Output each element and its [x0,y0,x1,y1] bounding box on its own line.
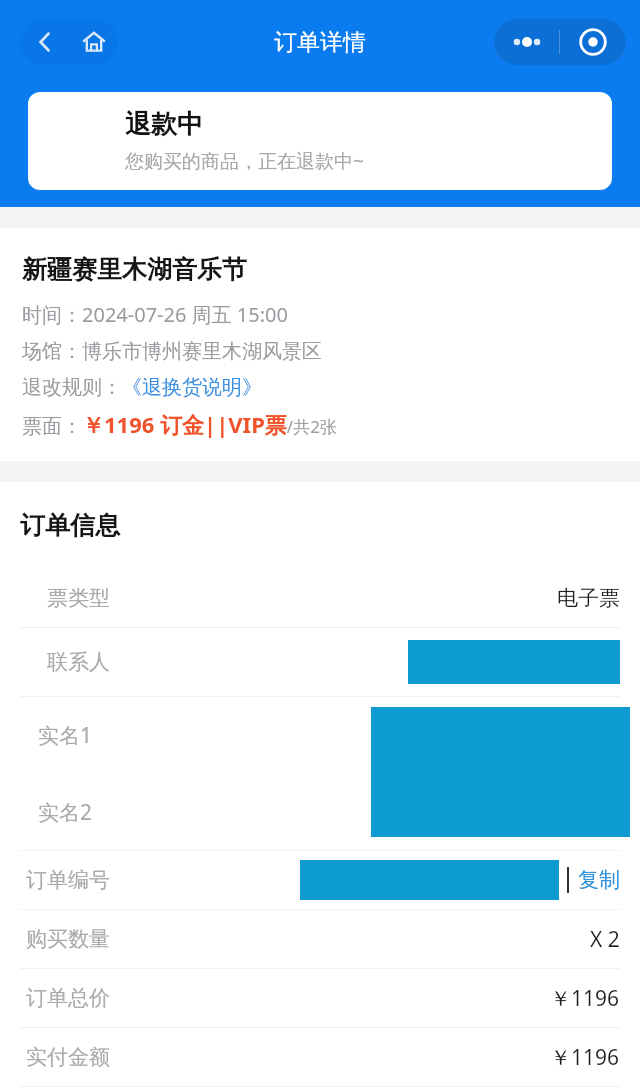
staticText: 订单总价 [26,985,110,1011]
staticText: 票面：￥1196 订金||VIP票/共2张 [22,409,337,439]
staticText: 实名1 [38,721,93,750]
staticText: ￥1196 [550,984,620,1013]
button[interactable]: 实付金额 [0,1028,640,1086]
staticText: 时间：2024-07-26 周五 15:00 [22,301,288,328]
button[interactable]: 票类型 [0,569,640,627]
staticText: 票类型 [47,585,110,611]
staticText: 购买数量 [26,926,110,952]
button[interactable]: 退款中 [28,92,612,190]
button[interactable]: 《退换货说明》 [122,375,262,400]
button[interactable]: Home [69,19,118,65]
staticText: 您购买的商品，正在退款中~ [125,148,364,174]
button[interactable]: 购买数量 [0,910,640,968]
button[interactable]: 订单总价 [0,969,640,1027]
button[interactable]: Back [20,19,69,65]
staticText: 实付金额 [26,1044,110,1070]
staticText: 场馆：博乐市博州赛里木湖风景区 [22,339,322,364]
staticText: 退款中 [125,108,203,141]
button[interactable]: 复制 [578,867,620,893]
button[interactable]: 联系人 [0,628,640,696]
button[interactable]: More options [494,19,559,65]
staticText: 联系人 [47,649,110,675]
button[interactable]: 订单编号 [0,851,640,909]
staticText: 订单详情 [274,28,366,57]
staticText: 《退换货说明》 [122,375,262,400]
staticText: 新疆赛里木湖音乐节 [22,254,247,285]
button[interactable]: Close mini program [560,19,626,65]
staticText: 订单编号 [26,867,110,893]
staticText: 订单信息 [20,510,120,541]
staticText: 实名2 [38,798,93,827]
staticText: 退改规则： [22,375,122,400]
staticText: 电子票 [557,585,620,611]
staticText: X 2 [590,925,620,954]
button[interactable]: 实名1 [0,697,640,850]
staticText: 复制 [578,867,620,893]
staticText: ￥1196 [550,1043,620,1072]
